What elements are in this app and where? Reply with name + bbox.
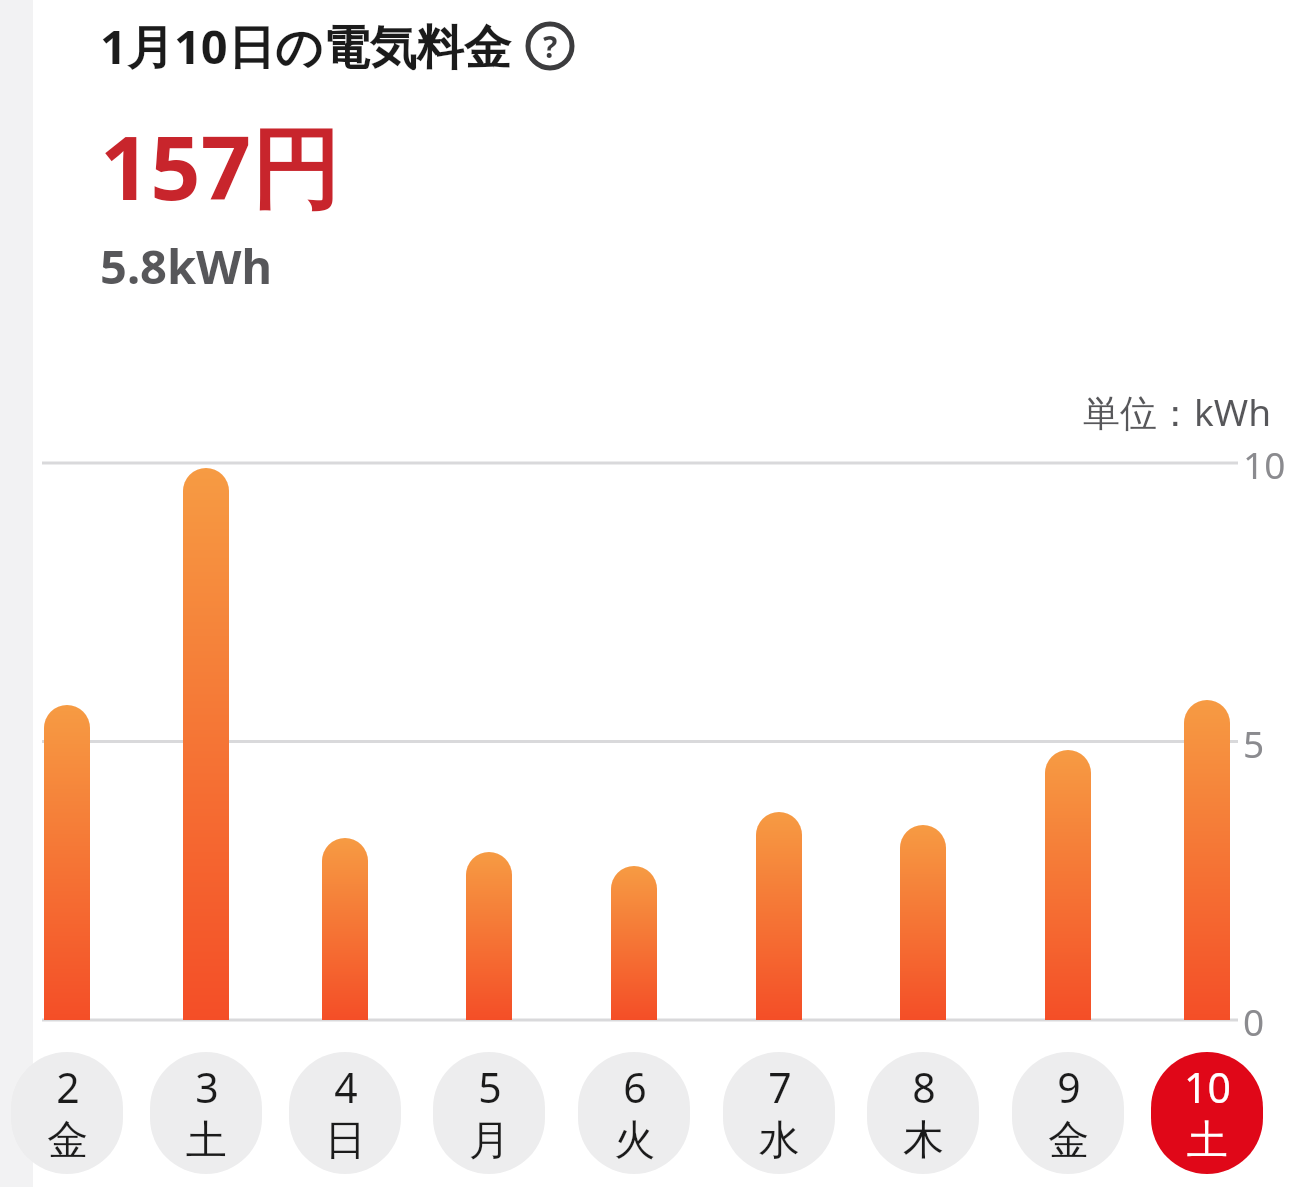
staticText: 0: [1243, 996, 1265, 1044]
staticText: 2: [56, 1059, 80, 1115]
staticText: 木: [903, 1115, 944, 1167]
button[interactable]: 8: [867, 1052, 979, 1174]
staticText: 7: [768, 1059, 792, 1115]
staticText: 水: [759, 1115, 800, 1167]
button[interactable]: 5: [433, 1052, 545, 1174]
staticText: 日: [325, 1115, 366, 1167]
button[interactable]: 10: [1151, 1052, 1263, 1174]
button[interactable]: Help about electricity charges: [525, 21, 575, 71]
button[interactable]: 6: [578, 1052, 690, 1174]
staticText: 5: [478, 1059, 502, 1115]
button[interactable]: 2: [11, 1052, 123, 1174]
staticText: 金: [1048, 1115, 1089, 1167]
button[interactable]: 9: [1012, 1052, 1124, 1174]
staticText: 10: [1243, 439, 1286, 487]
staticText: 金: [47, 1115, 88, 1167]
staticText: 1月10日の電気料金: [100, 14, 511, 78]
staticText: 月: [469, 1115, 510, 1167]
staticText: 9: [1057, 1059, 1081, 1115]
staticText: 4: [334, 1059, 358, 1115]
staticText: 単位：kWh: [1083, 386, 1272, 437]
staticText: 8: [912, 1059, 936, 1115]
staticText: 10: [1184, 1059, 1231, 1115]
button[interactable]: 4: [289, 1052, 401, 1174]
staticText: ?: [543, 26, 558, 67]
button[interactable]: 7: [723, 1052, 835, 1174]
button[interactable]: 3: [150, 1052, 262, 1174]
staticText: 火: [614, 1115, 655, 1167]
staticText: 5: [1243, 718, 1265, 766]
staticText: 157円: [100, 106, 340, 226]
staticText: 6: [623, 1059, 647, 1115]
staticText: 土: [1187, 1115, 1228, 1167]
staticText: 土: [186, 1115, 227, 1167]
staticText: 3: [195, 1059, 219, 1115]
staticText: 5.8kWh: [100, 234, 273, 298]
